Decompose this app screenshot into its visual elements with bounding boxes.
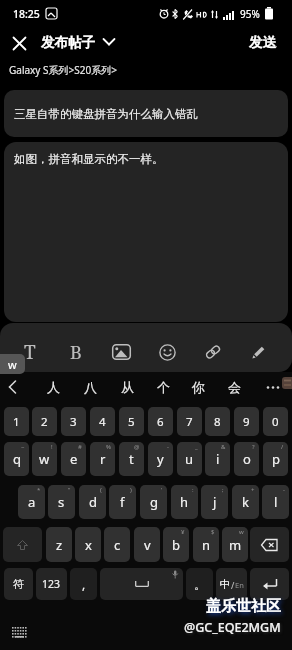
- button[interactable]: $: [193, 527, 219, 562]
- staticText: 你: [192, 379, 205, 395]
- button[interactable]: +: [232, 485, 259, 519]
- staticText: #: [78, 443, 82, 451]
- staticText: 中: [220, 578, 231, 591]
- button[interactable]: ": [48, 485, 75, 519]
- button[interactable]: 4: [90, 407, 115, 436]
- staticText: 0: [272, 414, 279, 430]
- button[interactable]: 0: [263, 407, 288, 436]
- button[interactable]: &: [205, 442, 230, 476]
- button[interactable]: ,: [70, 568, 97, 600]
- staticText: 2: [41, 414, 48, 430]
- button[interactable]: -: [148, 442, 173, 476]
- button[interactable]: 你: [185, 372, 211, 402]
- staticText: p: [272, 450, 280, 468]
- button[interactable]: 3: [61, 407, 86, 436]
- staticText: :: [192, 486, 194, 494]
- button[interactable]: 。: [186, 568, 213, 600]
- button[interactable]: B: [59, 335, 93, 369]
- button[interactable]: 会: [221, 372, 247, 402]
- button[interactable]: 人: [40, 372, 66, 402]
- button[interactable]: *: [18, 485, 45, 519]
- staticText: h: [180, 493, 189, 511]
- staticText: j: [213, 493, 217, 511]
- staticText: 4: [99, 414, 106, 430]
- button[interactable]: 八: [77, 372, 103, 402]
- button[interactable]: 8: [205, 407, 230, 436]
- button[interactable]: !: [32, 442, 57, 476]
- staticText: ;: [222, 486, 224, 494]
- button[interactable]: ;: [201, 485, 228, 519]
- button[interactable]: :: [171, 485, 198, 519]
- staticText: x: [85, 536, 92, 554]
- staticText: 9: [243, 414, 250, 430]
- button[interactable]: 123: [36, 568, 67, 600]
- staticText: 发送: [249, 34, 276, 51]
- button[interactable]: [196, 335, 230, 369]
- button[interactable]: 发布帖子: [41, 26, 115, 58]
- button[interactable]: 三星自带的键盘拼音为什么输入错乱: [4, 90, 288, 137]
- button[interactable]: T: [13, 335, 47, 369]
- staticText: b: [172, 536, 180, 554]
- button[interactable]: [258, 372, 288, 402]
- staticText: w: [39, 450, 50, 468]
- staticText: n: [202, 536, 211, 554]
- button[interactable]: 符: [4, 568, 33, 600]
- staticText: ": [68, 486, 71, 494]
- button[interactable]: ¥: [163, 527, 189, 562]
- staticText: &: [221, 443, 226, 451]
- staticText: 八: [84, 379, 97, 395]
- button[interactable]: 6: [148, 407, 173, 436]
- button[interactable]: 中: [216, 568, 247, 600]
- staticText: z: [56, 536, 63, 554]
- button[interactable]: [100, 568, 183, 600]
- staticText: ': [161, 486, 163, 494]
- button[interactable]: z: [46, 527, 72, 562]
- button[interactable]: -: [262, 485, 289, 519]
- button[interactable]: [8, 32, 30, 54]
- button[interactable]: [242, 335, 276, 369]
- staticText: k: [242, 493, 249, 511]
- button[interactable]: 从: [114, 372, 140, 402]
- button[interactable]: ): [109, 485, 136, 519]
- button[interactable]: c: [104, 527, 130, 562]
- button[interactable]: [104, 335, 138, 369]
- button[interactable]: 9: [234, 407, 259, 436]
- button[interactable]: [250, 568, 289, 600]
- button[interactable]: 如图，拼音和显示的不一样。: [4, 142, 288, 322]
- button[interactable]: 5: [119, 407, 144, 436]
- staticText: 发布帖子: [41, 34, 95, 51]
- staticText: w: [239, 528, 244, 536]
- button[interactable]: w: [222, 527, 248, 562]
- button[interactable]: /: [263, 442, 288, 476]
- button[interactable]: v: [134, 527, 160, 562]
- button[interactable]: x: [75, 527, 101, 562]
- button[interactable]: [3, 527, 42, 562]
- button[interactable]: 7: [177, 407, 202, 436]
- button[interactable]: 1: [4, 407, 29, 436]
- button[interactable]: 发送: [249, 34, 276, 51]
- staticText: 会: [228, 379, 241, 395]
- staticText: +: [251, 486, 255, 494]
- button[interactable]: %: [90, 442, 115, 476]
- staticText: 95%: [240, 7, 260, 21]
- button[interactable]: #: [61, 442, 86, 476]
- button[interactable]: _: [177, 442, 202, 476]
- button[interactable]: [150, 335, 184, 369]
- staticText: 3: [70, 414, 77, 430]
- staticText: @GC_EQE2MGM: [184, 619, 281, 636]
- staticText: 。: [194, 577, 206, 592]
- button[interactable]: ': [140, 485, 167, 519]
- staticText: e: [70, 450, 78, 468]
- button[interactable]: 个: [150, 372, 176, 402]
- button[interactable]: @: [119, 442, 144, 476]
- staticText: Galaxy S系列>S20系列>: [9, 63, 117, 77]
- staticText: 8: [214, 414, 221, 430]
- staticText: _: [195, 443, 198, 451]
- button[interactable]: [250, 527, 289, 562]
- staticText: g: [150, 493, 158, 511]
- button[interactable]: (: [79, 485, 106, 519]
- button[interactable]: ?: [234, 442, 259, 476]
- button[interactable]: ~: [4, 442, 29, 476]
- staticText: 盖乐世社区: [206, 597, 281, 616]
- button[interactable]: 2: [32, 407, 57, 436]
